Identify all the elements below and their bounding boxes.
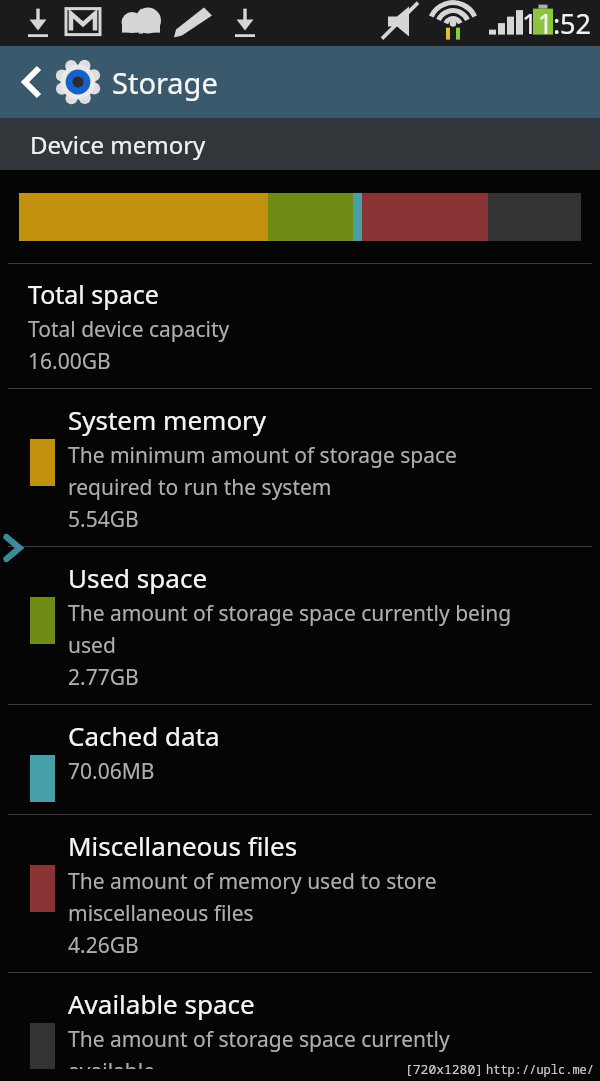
button[interactable]: Used space [0, 547, 600, 704]
button[interactable]: Back [0, 46, 600, 118]
staticText: 4.26GB [68, 931, 139, 960]
staticText: The amount of storage space currently [68, 1025, 450, 1054]
button[interactable]: Open panel [0, 509, 29, 587]
button[interactable]: Cached data [0, 705, 600, 814]
staticText: Miscellaneous files [68, 828, 298, 863]
staticText: The minimum amount of storage space [68, 441, 457, 470]
staticText: System memory [68, 402, 267, 437]
staticText: 11:52 [522, 5, 592, 42]
staticText: Available space [68, 986, 255, 1021]
staticText: The amount of storage space currently be… [68, 599, 512, 628]
staticText: Storage [112, 63, 218, 102]
staticText: used [68, 631, 116, 660]
button[interactable]: Miscellaneous files [0, 815, 600, 972]
staticText: Total device capacity [28, 315, 230, 344]
staticText: Total space [28, 277, 159, 311]
button[interactable]: Available space [0, 973, 600, 1081]
staticText: available [68, 1057, 156, 1069]
button[interactable]: System memory [0, 389, 600, 546]
staticText: required to run the system [68, 473, 332, 502]
staticText: http://uplc.me/ [486, 1061, 595, 1077]
staticText: 16.00GB [28, 347, 111, 376]
staticText: 5.54GB [68, 505, 139, 534]
staticText: Device memory [30, 128, 206, 161]
staticText: The amount of memory used to store [68, 867, 437, 896]
staticText: Used space [68, 560, 208, 595]
button[interactable]: Total space [0, 264, 600, 388]
staticText: Cached data [68, 718, 220, 753]
staticText: 70.06MB [68, 757, 155, 786]
staticText: [720x1280] [405, 1060, 484, 1078]
staticText: 2.77GB [68, 663, 139, 692]
button[interactable]: Back [12, 62, 52, 102]
staticText: miscellaneous files [68, 899, 254, 928]
